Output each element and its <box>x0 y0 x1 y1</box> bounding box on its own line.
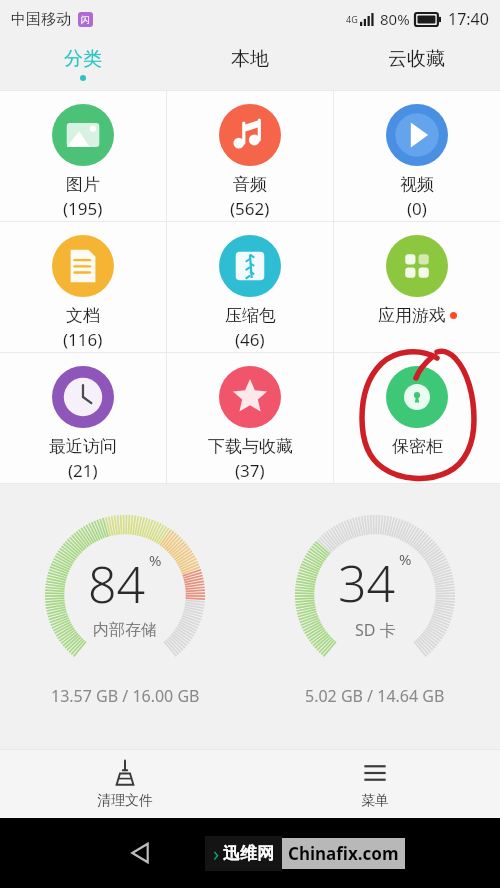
staticText: 清理文件 <box>97 792 153 810</box>
staticText: 下载与收藏 <box>208 436 293 457</box>
staticText: 34 <box>338 549 396 617</box>
button[interactable]: 分类 <box>0 38 166 90</box>
button[interactable]: 压缩包 <box>167 222 333 352</box>
button[interactable]: 84 <box>0 507 250 707</box>
staticText: Chinafix.com <box>288 842 399 865</box>
staticText: 闪 <box>81 14 90 25</box>
staticText: 最近访问 <box>49 436 117 457</box>
staticText: 菜单 <box>361 792 389 810</box>
staticText: 视频 <box>400 174 434 195</box>
button[interactable]: 云收藏 <box>333 38 500 90</box>
staticText: 文档 <box>66 305 100 326</box>
staticText: (0) <box>407 197 427 220</box>
staticText: 迅维网 <box>223 843 274 864</box>
staticText: (46) <box>235 328 265 351</box>
staticText: (562) <box>230 197 270 220</box>
staticText: 13.57 GB / 16.00 GB <box>51 685 200 707</box>
staticText: (21) <box>68 459 98 482</box>
button[interactable]: 保密柜 <box>334 353 500 483</box>
staticText: 4G <box>346 13 358 25</box>
staticText: 80% <box>380 9 410 29</box>
staticText: 压缩包 <box>225 305 276 326</box>
staticText: (37) <box>235 459 265 482</box>
button[interactable]: 下载与收藏 <box>167 353 333 483</box>
staticText: › <box>213 840 220 867</box>
staticText: 云收藏 <box>388 47 445 71</box>
button[interactable]: 34 <box>250 507 500 707</box>
staticText: (195) <box>63 197 103 220</box>
staticText: 图片 <box>66 174 100 195</box>
staticText: 中国移动 <box>11 10 71 29</box>
staticText: % <box>149 550 162 570</box>
button[interactable]: 图片 <box>0 91 166 221</box>
button[interactable]: 菜单 <box>250 750 500 818</box>
staticText: SD 卡 <box>355 619 396 641</box>
staticText: 保密柜 <box>392 436 443 457</box>
staticText: (116) <box>63 328 103 351</box>
button[interactable]: Back <box>120 833 160 873</box>
staticText: 5.02 GB / 14.64 GB <box>305 685 445 707</box>
staticText: 84 <box>88 550 146 618</box>
button[interactable]: 视频 <box>334 91 500 221</box>
staticText: 音频 <box>233 174 267 195</box>
button[interactable]: 音频 <box>167 91 333 221</box>
button[interactable]: 文档 <box>0 222 166 352</box>
staticText: 应用游戏 <box>378 305 446 326</box>
button[interactable]: 本地 <box>166 38 333 90</box>
staticText: 分类 <box>64 47 102 71</box>
staticText: 本地 <box>231 47 269 71</box>
staticText: % <box>399 549 412 569</box>
staticText: 17:40 <box>448 8 489 30</box>
button[interactable]: 清理文件 <box>0 750 250 818</box>
staticText: 内部存储 <box>93 620 157 640</box>
button[interactable]: 最近访问 <box>0 353 166 483</box>
button[interactable]: 应用游戏 <box>334 222 500 352</box>
